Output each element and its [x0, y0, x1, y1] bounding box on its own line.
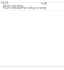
staticText: ◐▲▮ — [41, 1, 48, 4]
staticText: Your schedule for today is ready — [3, 6, 47, 10]
staticText: Good morning — [3, 4, 23, 8]
staticText: 10:24 — [1, 1, 9, 5]
